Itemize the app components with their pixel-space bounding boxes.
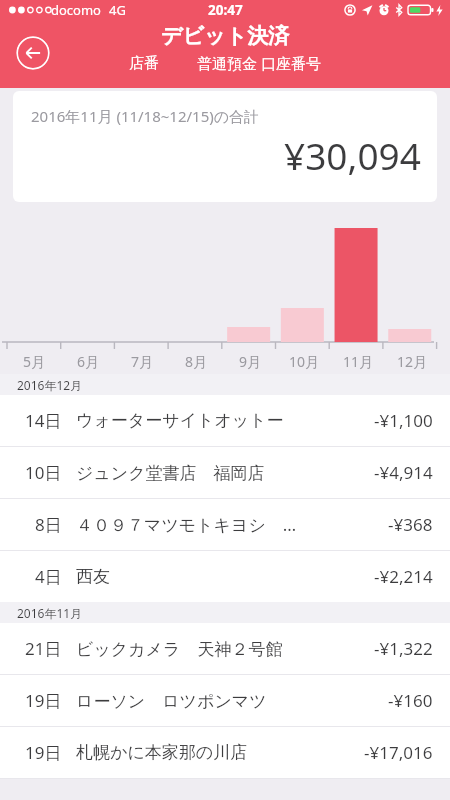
staticText: 20:47 bbox=[208, 1, 243, 19]
staticText: 2016年11月 bbox=[17, 605, 83, 621]
staticText: ４０９７マツモトキヨシ … bbox=[76, 513, 297, 536]
button[interactable]: 21日 bbox=[0, 623, 450, 674]
staticText: 10日 bbox=[25, 461, 62, 484]
staticText: 2016年12月 bbox=[17, 377, 83, 393]
staticText: 店番 bbox=[129, 54, 159, 73]
button[interactable]: Back bbox=[16, 36, 50, 70]
staticText: 21日 bbox=[25, 637, 62, 660]
staticText: 4G bbox=[109, 1, 126, 19]
staticText: ローソン ロツポンマツ bbox=[76, 689, 267, 712]
staticText: 2016年11月 (11/18~12/15)の合計 bbox=[31, 106, 260, 126]
staticText: 5月 bbox=[23, 352, 46, 371]
staticText: 西友 bbox=[76, 566, 110, 587]
staticText: デビット決済 bbox=[161, 23, 289, 49]
staticText: ビックカメラ 天神２号館 bbox=[76, 637, 283, 660]
staticText: 6月 bbox=[77, 352, 100, 371]
staticText: ¥30,094 bbox=[284, 130, 421, 180]
staticText: 9月 bbox=[239, 352, 262, 371]
staticText: -¥2,214 bbox=[374, 565, 433, 588]
staticText: -¥1,100 bbox=[374, 409, 433, 432]
button[interactable]: 14日 bbox=[0, 395, 450, 446]
button[interactable]: 2016年11月 (11/18~12/15)の合計 bbox=[13, 91, 437, 202]
staticText: -¥368 bbox=[388, 513, 433, 536]
staticText: docomo bbox=[51, 1, 101, 19]
staticText: -¥160 bbox=[388, 689, 433, 712]
staticText: 19日 bbox=[25, 689, 62, 712]
staticText: 8月 bbox=[185, 352, 208, 371]
staticText: 11月 bbox=[343, 352, 374, 371]
staticText: 10月 bbox=[289, 352, 320, 371]
staticText: 19日 bbox=[25, 741, 62, 764]
staticText: ジュンク堂書店 福岡店 bbox=[76, 461, 265, 484]
staticText: 12月 bbox=[397, 352, 428, 371]
button[interactable]: 4日 bbox=[0, 551, 450, 602]
staticText: 札幌かに本家那の川店 bbox=[76, 742, 248, 763]
staticText: 8日 bbox=[35, 513, 62, 536]
staticText: 14日 bbox=[25, 409, 62, 432]
staticText: 4日 bbox=[35, 565, 62, 588]
button[interactable]: 19日 bbox=[0, 675, 450, 726]
staticText: 普通預金 口座番号 bbox=[197, 53, 321, 73]
staticText: -¥1,322 bbox=[374, 637, 433, 660]
staticText: 7月 bbox=[131, 352, 154, 371]
button[interactable]: 8日 bbox=[0, 499, 450, 550]
button[interactable]: 19日 bbox=[0, 727, 450, 778]
staticText: ウォーターサイトオットー bbox=[76, 410, 284, 431]
staticText: -¥4,914 bbox=[374, 461, 433, 484]
button[interactable]: 10日 bbox=[0, 447, 450, 498]
staticText: -¥17,016 bbox=[364, 741, 433, 764]
